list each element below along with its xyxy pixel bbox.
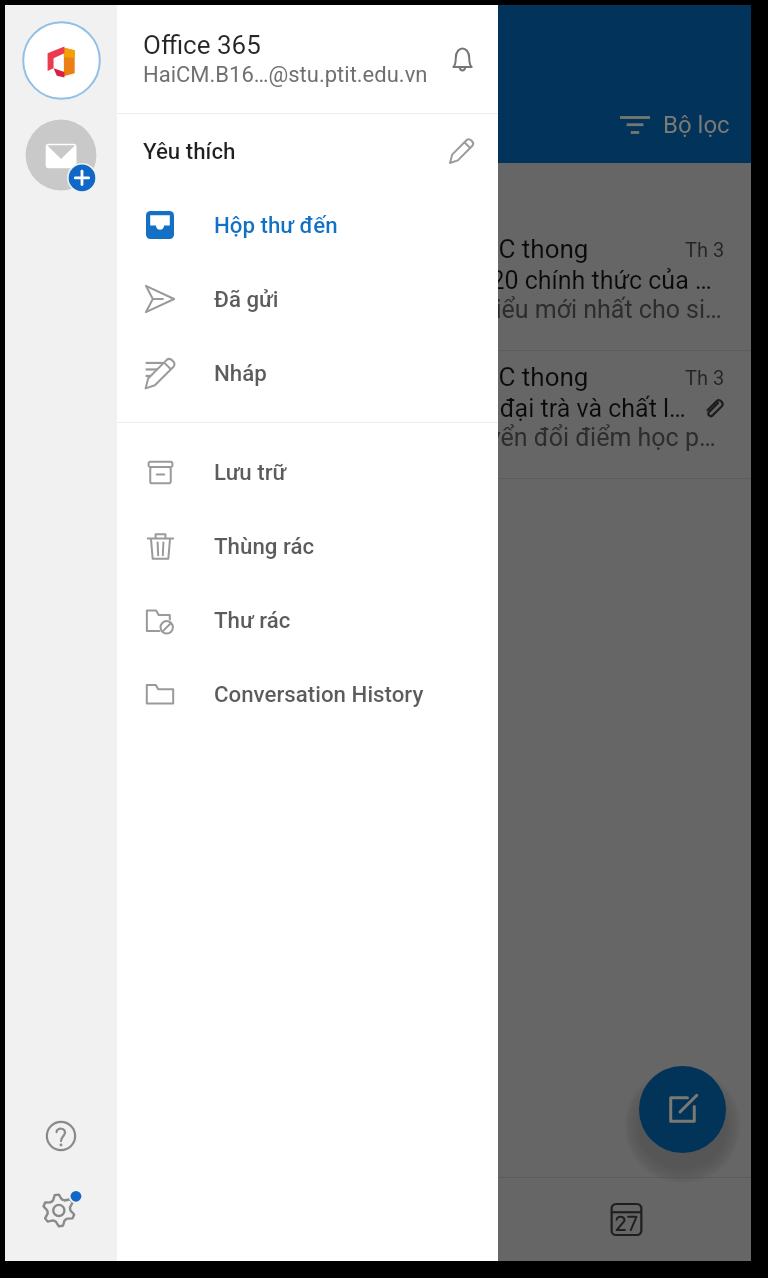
button[interactable]: Tổng đài thông tin Học viện Công nghệ BC… [5,351,751,478]
button[interactable]: Lưu trữ [117,435,498,509]
button[interactable]: Office 365 account [18,17,104,103]
button[interactable]: Mail [5,1177,253,1261]
staticText: Thùng rác [214,533,315,559]
button[interactable]: Nháp [117,336,498,410]
button[interactable]: Calendar [502,1177,751,1261]
staticText: Thời khóa biểu học kỳ 2 năm học 2019-202… [29,266,725,295]
staticText: Nháp [214,360,267,386]
button[interactable]: Notifications [436,33,488,85]
staticText: Phòng đào tạo ĐT đã cập nhật thời khóa b… [29,295,725,324]
staticText: Th 3 [685,366,725,389]
button[interactable]: Hộp thư đến [117,188,498,262]
button[interactable]: Search [253,1177,502,1261]
staticText: Đã gửi [214,286,279,312]
button[interactable]: Conversation History [117,657,498,731]
button[interactable]: Settings [25,1173,97,1245]
staticText: Thông báo chuyển đổi điểm khóa 2016 hệ đ… [29,394,688,423]
button[interactable]: Bộ lọc [616,104,734,146]
button[interactable]: Đã gửi [117,262,498,336]
staticText: Danh sách sinh viên dự kiến được xét chu… [29,423,725,452]
button[interactable]: Thùng rác [117,509,498,583]
staticText: Thư rác [214,607,291,633]
staticText: Yêu thích [143,138,436,164]
button[interactable]: Compose new mail [639,1066,726,1153]
staticText: Th 3 [685,238,725,261]
staticText: Hộp thư đến [214,212,338,238]
button[interactable]: Help [25,1100,97,1172]
button[interactable]: Thư rác [117,583,498,657]
staticText: Tổng đài thông tin Học viện Công nghệ BC… [29,234,675,264]
staticText: Conversation History [214,681,424,707]
button[interactable]: Office 365 [117,5,498,113]
staticText: Office 365 [143,30,261,60]
button[interactable]: Add account [18,112,104,198]
staticText: HaiCM.B16…@stu.ptit.edu.vn [143,62,428,88]
staticText: Lưu trữ [214,459,287,485]
button[interactable]: Tổng đài thông tin Học viện Công nghệ BC… [5,223,751,350]
staticText: Tổng đài thông tin Học viện Công nghệ BC… [29,362,675,392]
button[interactable]: Edit favourites [436,125,488,177]
staticText: Bộ lọc [663,111,730,139]
